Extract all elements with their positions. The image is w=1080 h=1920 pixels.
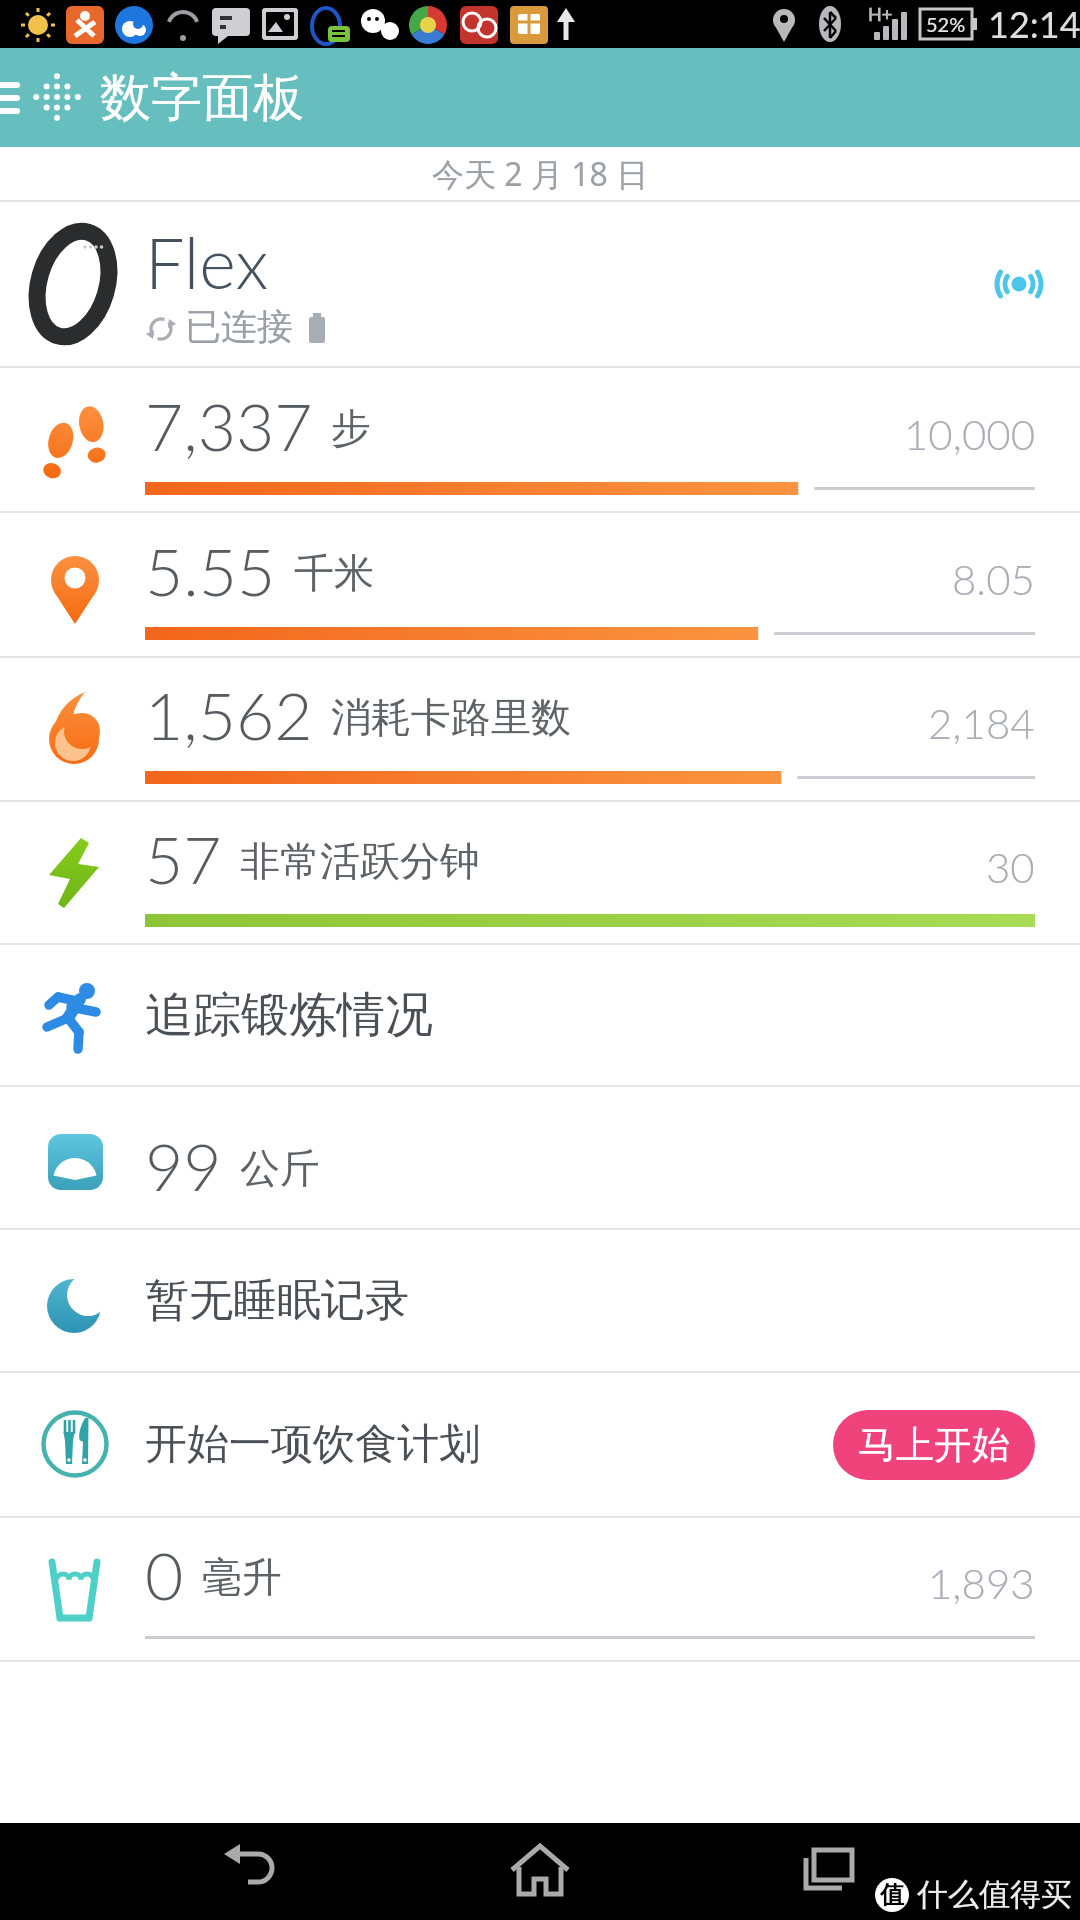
staticText: 0 bbox=[145, 1535, 184, 1614]
button[interactable] bbox=[500, 1832, 580, 1912]
staticText: 30 bbox=[986, 842, 1035, 892]
staticText: 数字面板 bbox=[100, 66, 304, 130]
button[interactable]: Flex bbox=[0, 202, 1080, 366]
staticText: 7,337 bbox=[145, 386, 313, 465]
staticText: 消耗卡路里数 bbox=[331, 692, 571, 742]
staticText: 千米 bbox=[294, 548, 374, 598]
staticText: 1,893 bbox=[928, 1558, 1035, 1608]
staticText: 2,184 bbox=[928, 698, 1035, 748]
staticText: 10,000 bbox=[904, 409, 1035, 459]
staticText: 52% bbox=[926, 12, 966, 36]
button[interactable]: 马上开始 bbox=[833, 1410, 1035, 1480]
staticText: 非常活跃分钟 bbox=[240, 836, 480, 886]
staticText: 1,562 bbox=[145, 675, 313, 754]
staticText: 马上开始 bbox=[858, 1421, 1010, 1469]
staticText: 追踪锻炼情况 bbox=[145, 985, 433, 1045]
staticText: 开始一项饮食计划 bbox=[145, 1418, 481, 1471]
staticText: 5.55 bbox=[145, 531, 276, 610]
staticText: 8.05 bbox=[952, 554, 1035, 604]
button[interactable]: 0 bbox=[0, 1518, 1080, 1660]
button[interactable]: 暂无睡眠记录 bbox=[0, 1230, 1080, 1371]
staticText: 已连接 bbox=[185, 304, 293, 349]
button[interactable]: 开始一项饮食计划 bbox=[0, 1373, 1080, 1516]
staticText: 步 bbox=[331, 403, 371, 453]
button[interactable]: 99 bbox=[0, 1087, 1080, 1228]
button[interactable]: 1,562 bbox=[0, 658, 1080, 800]
staticText: Flex bbox=[145, 220, 269, 304]
staticText: 12:14 bbox=[988, 2, 1080, 45]
button[interactable]: 5.55 bbox=[0, 513, 1080, 656]
staticText: 暂无睡眠记录 bbox=[145, 1273, 409, 1328]
button[interactable]: 7,337 bbox=[0, 368, 1080, 511]
staticText: 公斤 bbox=[240, 1143, 320, 1193]
staticText: 毫升 bbox=[202, 1552, 282, 1602]
staticText: 57 bbox=[145, 819, 222, 898]
button[interactable] bbox=[212, 1832, 292, 1912]
button[interactable]: 数字面板 bbox=[100, 66, 304, 130]
staticText: 什么值得买 bbox=[917, 1875, 1072, 1914]
button[interactable]: 57 bbox=[0, 802, 1080, 943]
button[interactable]: 追踪锻炼情况 bbox=[0, 945, 1080, 1085]
staticText: 值 bbox=[880, 1880, 904, 1910]
staticText: 99 bbox=[145, 1126, 222, 1205]
button[interactable] bbox=[788, 1832, 868, 1912]
staticText: H+ bbox=[868, 3, 893, 25]
staticText: 今天 2 月 18 日 bbox=[432, 152, 649, 196]
